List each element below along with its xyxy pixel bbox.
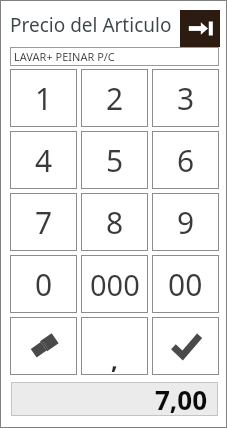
staticText: LAVAR+ PEINAR P/C [14, 49, 115, 64]
staticText: 0 [35, 264, 53, 305]
button[interactable]: 2 [81, 69, 148, 127]
staticText: 9 [177, 202, 195, 243]
staticText: Precio del Articulo [10, 12, 172, 38]
staticText: , [111, 343, 118, 375]
staticText: 2 [106, 78, 124, 119]
button[interactable]: Borrar [10, 317, 77, 375]
staticText: 1 [35, 78, 53, 119]
button[interactable]: 4 [10, 131, 77, 189]
staticText: 4 [35, 140, 53, 181]
staticText: 6 [177, 140, 195, 181]
button[interactable]: LAVAR+ PEINAR P/C [10, 47, 219, 66]
staticText: 7 [35, 202, 53, 243]
button[interactable]: , [81, 317, 148, 375]
staticText: 3 [177, 78, 195, 119]
button[interactable]: 8 [81, 193, 148, 251]
button[interactable]: 00 [152, 255, 219, 313]
button[interactable]: 9 [152, 193, 219, 251]
button[interactable]: Siguiente campo [180, 10, 220, 47]
button[interactable]: 6 [152, 131, 219, 189]
staticText: 7,00 [154, 382, 207, 416]
staticText: 00 [168, 264, 203, 305]
button[interactable]: 5 [81, 131, 148, 189]
button[interactable]: 000 [81, 255, 148, 313]
button[interactable]: 1 [10, 69, 77, 127]
button[interactable]: 3 [152, 69, 219, 127]
button[interactable]: 0 [10, 255, 77, 313]
button[interactable]: Aceptar [152, 317, 219, 375]
staticText: 000 [90, 265, 140, 304]
button[interactable]: 7,00 [11, 382, 218, 416]
staticText: 8 [106, 202, 124, 243]
staticText: 5 [106, 140, 124, 181]
button[interactable]: 7 [10, 193, 77, 251]
